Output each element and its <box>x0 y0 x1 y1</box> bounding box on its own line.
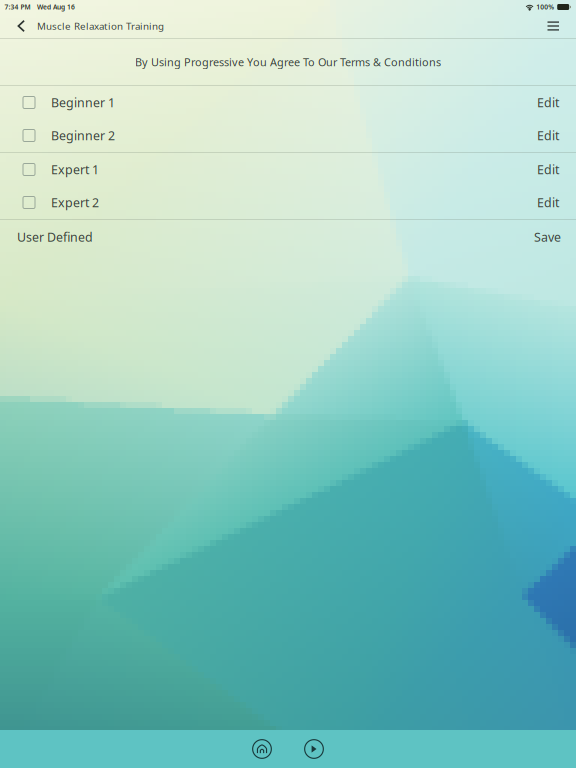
staticText: 7:34 PM <box>4 2 30 12</box>
staticText: User Defined <box>17 229 93 245</box>
staticText: Wed Aug 16 <box>37 2 75 12</box>
staticText: Edit <box>537 94 559 111</box>
button[interactable]: Beginner 2 <box>0 119 576 152</box>
staticText: Expert 1 <box>51 161 99 178</box>
staticText: Beginner 2 <box>51 127 115 144</box>
staticText: By Using Progressive You Agree To Our Te… <box>135 55 441 69</box>
staticText: 100% <box>536 2 554 12</box>
staticText: Save <box>534 229 561 245</box>
button[interactable]: Menu <box>533 21 576 31</box>
button[interactable]: Play <box>304 739 324 759</box>
button[interactable]: User Defined <box>0 220 576 254</box>
button[interactable]: Expert 2 <box>0 186 576 219</box>
staticText: Muscle Relaxation Training <box>37 19 164 33</box>
staticText: Beginner 1 <box>51 94 115 111</box>
button[interactable]: Home <box>252 739 272 759</box>
staticText: Edit <box>537 127 559 144</box>
button[interactable]: Back <box>0 20 37 32</box>
button[interactable]: Expert 1 <box>0 153 576 186</box>
staticText: Expert 2 <box>51 194 99 211</box>
button[interactable]: Beginner 1 <box>0 86 576 119</box>
staticText: Edit <box>537 161 559 178</box>
staticText: Edit <box>537 194 559 211</box>
